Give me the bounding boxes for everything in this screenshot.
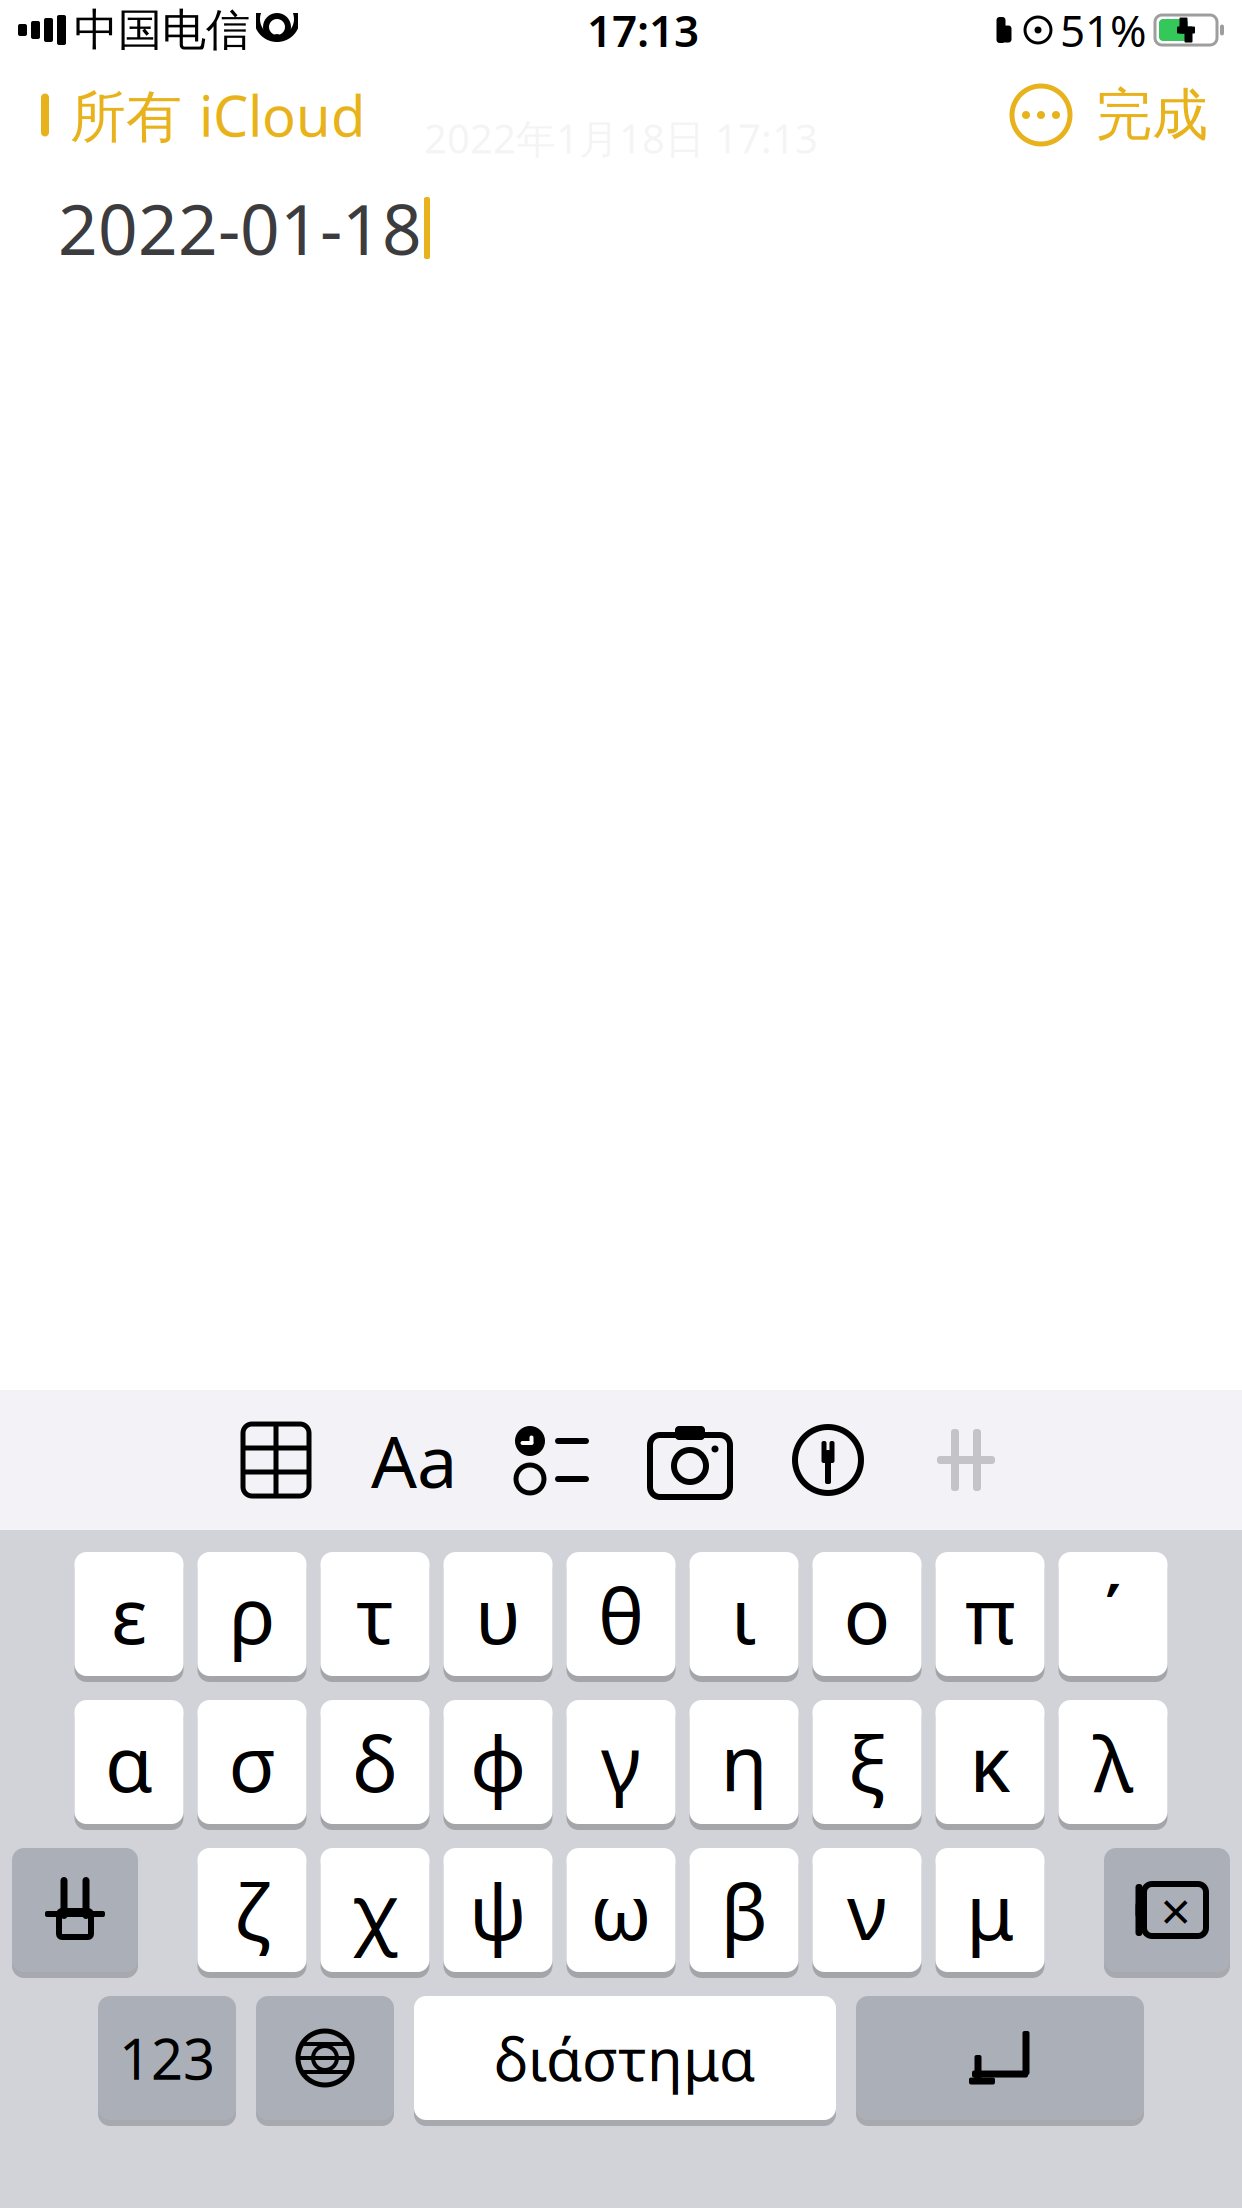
button[interactable]: ε [74, 1552, 183, 1682]
button[interactable]: Table [207, 1404, 345, 1516]
button[interactable]: ξ [812, 1700, 921, 1830]
button[interactable]: Return [856, 1996, 1144, 2126]
staticText: η [720, 1711, 767, 1813]
staticText: ξ [848, 1711, 886, 1813]
button[interactable]: Numbers [98, 1996, 236, 2126]
staticText: 完成 [1096, 81, 1208, 149]
staticText: διάστημα [494, 2019, 756, 2097]
button[interactable]: μ [935, 1848, 1044, 1978]
staticText: θ [598, 1563, 644, 1665]
button[interactable]: More [1000, 76, 1082, 154]
staticText: τ [356, 1563, 394, 1665]
staticText: 17:13 [587, 1, 699, 59]
staticText: σ [228, 1711, 275, 1813]
button[interactable]: π [935, 1552, 1044, 1682]
staticText: κ [969, 1711, 1010, 1813]
staticText: 51% [1060, 1, 1147, 59]
button[interactable]: ψ [443, 1848, 552, 1978]
staticText: ι [731, 1563, 757, 1665]
staticText: α [105, 1711, 153, 1813]
staticText: 2022年1月18日 17:13 [424, 111, 818, 164]
button[interactable]: ι [689, 1552, 798, 1682]
button[interactable]: Format [345, 1404, 483, 1516]
button[interactable]: υ [443, 1552, 552, 1682]
button[interactable]: 完成 [1082, 71, 1222, 159]
button[interactable]: κ [935, 1700, 1044, 1830]
button[interactable]: η [689, 1700, 798, 1830]
button[interactable]: ζ [197, 1848, 306, 1978]
staticText: χ [352, 1859, 398, 1961]
button[interactable]: Camera [621, 1404, 759, 1516]
button[interactable]: Delete [1104, 1848, 1230, 1978]
staticText: 中国电信 [74, 3, 250, 57]
button[interactable]: α [74, 1700, 183, 1830]
button[interactable]: γ [566, 1700, 675, 1830]
staticText: ζ [234, 1859, 270, 1961]
button[interactable]: Shift [12, 1848, 138, 1978]
button[interactable]: θ [566, 1552, 675, 1682]
staticText: ψ [469, 1859, 527, 1961]
staticText: λ [1093, 1711, 1133, 1813]
staticText: ο [843, 1563, 890, 1665]
staticText: 所有 iCloud [70, 78, 365, 152]
staticText: 2022-01-18 [58, 182, 422, 274]
staticText: γ [601, 1711, 641, 1813]
staticText: ω [590, 1859, 652, 1961]
staticText: μ [966, 1859, 1014, 1961]
button[interactable]: Checklist [483, 1404, 621, 1516]
staticText: × [1160, 1875, 1191, 1945]
staticText: ρ [229, 1563, 275, 1665]
staticText: 123 [119, 2021, 215, 2095]
staticText: Aa [371, 1412, 457, 1508]
button[interactable]: λ [1058, 1700, 1167, 1830]
button[interactable]: σ [197, 1700, 306, 1830]
button[interactable]: ν [812, 1848, 921, 1978]
button[interactable]: β [689, 1848, 798, 1978]
button[interactable]: φ [443, 1700, 552, 1830]
button[interactable]: Next keyboard [256, 1996, 394, 2126]
button[interactable]: Markup [759, 1404, 897, 1516]
button[interactable]: δ [320, 1700, 429, 1830]
staticText: ν [847, 1859, 887, 1961]
staticText: δ [352, 1711, 397, 1813]
staticText: υ [475, 1563, 521, 1665]
button[interactable]: διάστημα [414, 1996, 836, 2126]
button[interactable]: τ [320, 1552, 429, 1682]
button[interactable]: ο [812, 1552, 921, 1682]
button[interactable]: ω [566, 1848, 675, 1978]
staticText: ΄ [1104, 1563, 1122, 1665]
staticText: β [720, 1859, 767, 1961]
button[interactable]: 所有 iCloud [20, 68, 377, 162]
staticText: φ [470, 1711, 526, 1813]
staticText: ε [111, 1563, 147, 1665]
button[interactable]: Close [897, 1404, 1035, 1516]
button[interactable]: ρ [197, 1552, 306, 1682]
button[interactable]: χ [320, 1848, 429, 1978]
button[interactable]: ΄ [1058, 1552, 1167, 1682]
staticText: π [965, 1563, 1015, 1665]
